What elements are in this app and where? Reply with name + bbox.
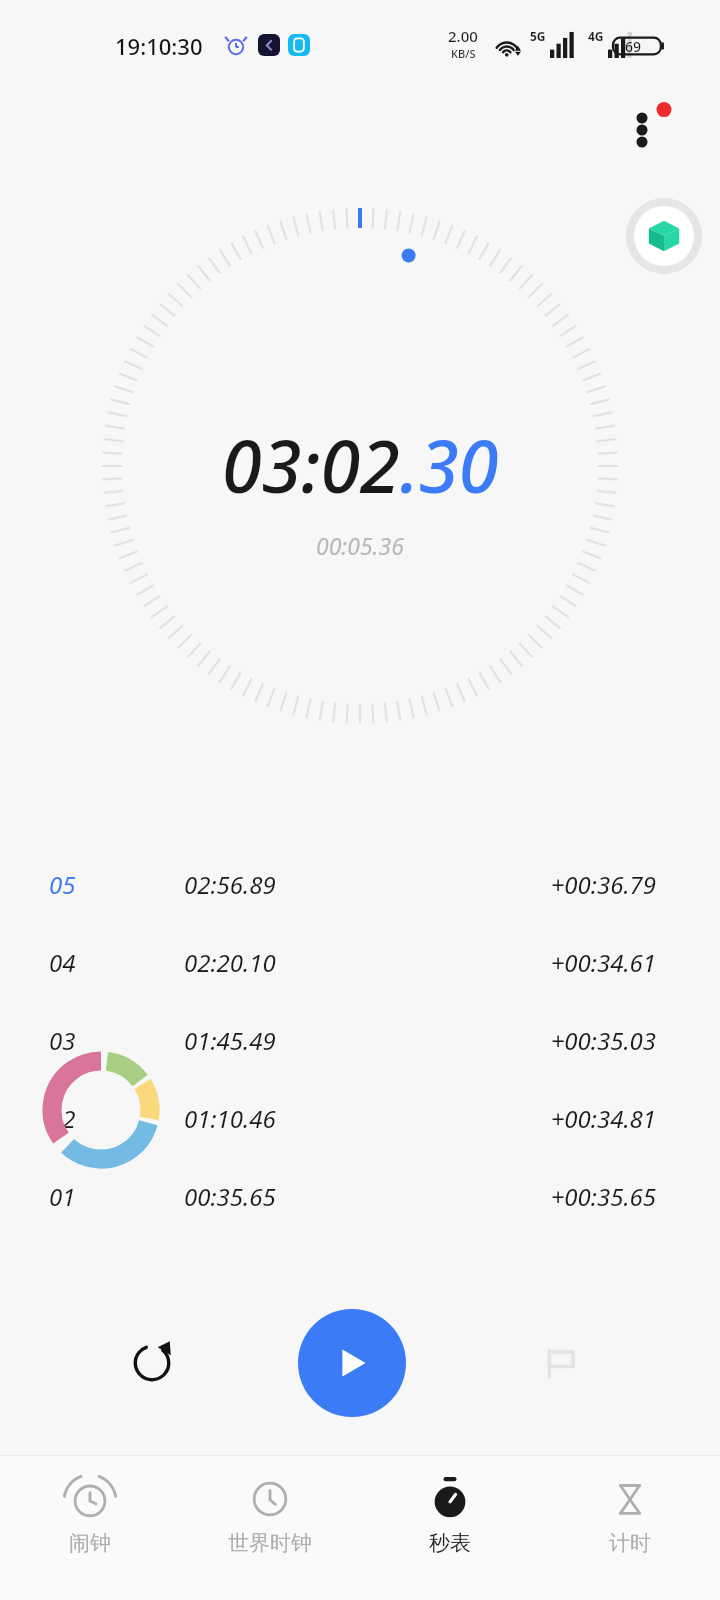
staticText: 5G (530, 28, 546, 44)
staticText: +00:35.65 (550, 1180, 656, 1213)
button[interactable]: 03 (0, 1001, 720, 1079)
staticText: 01:10.46 (184, 1102, 276, 1135)
staticText: +00:34.81 (550, 1102, 656, 1135)
staticText: 69 (625, 37, 642, 56)
button[interactable]: Reset (110, 1321, 194, 1405)
staticText: 秒表 (429, 1530, 471, 1556)
button[interactable]: More options (612, 100, 672, 160)
staticText: 闹钟 (69, 1530, 111, 1556)
staticText: 00:05.36 (316, 530, 404, 561)
staticText: 04 (49, 946, 76, 979)
staticText: +00:36.79 (550, 868, 656, 901)
staticText: 19:10:30 (115, 31, 203, 61)
staticText: 4G (588, 28, 604, 44)
staticText: +00:35.03 (550, 1024, 656, 1057)
button[interactable]: 01 (0, 1157, 720, 1235)
staticText: 02 (49, 1102, 76, 1135)
staticText: KB/S (451, 46, 476, 61)
button[interactable]: Lap (518, 1321, 602, 1405)
staticText: 05 (49, 868, 76, 901)
button[interactable]: 秒表 (360, 1456, 540, 1556)
staticText: .30 (400, 416, 499, 514)
staticText: 02:56.89 (184, 868, 276, 901)
staticText: 世界时钟 (228, 1530, 312, 1556)
staticText: 01 (49, 1180, 76, 1213)
button[interactable]: 计时 (540, 1456, 720, 1556)
button[interactable]: AR cube (626, 198, 702, 274)
button[interactable]: 世界时钟 (180, 1456, 360, 1556)
button[interactable]: 05 (0, 845, 720, 923)
staticText: +00:34.61 (550, 946, 656, 979)
staticText: 03 (49, 1024, 76, 1057)
staticText: 计时 (609, 1530, 651, 1556)
staticText: 03:02 (222, 416, 400, 514)
button[interactable]: 04 (0, 923, 720, 1001)
staticText: 01:45.49 (184, 1024, 276, 1057)
staticText: 2.00 (448, 26, 478, 46)
button[interactable]: 闹钟 (0, 1456, 180, 1556)
staticText: 00:35.65 (184, 1180, 276, 1213)
staticText: 02:20.10 (184, 946, 276, 979)
button[interactable]: 02 (0, 1079, 720, 1157)
button[interactable]: Start (298, 1309, 406, 1417)
